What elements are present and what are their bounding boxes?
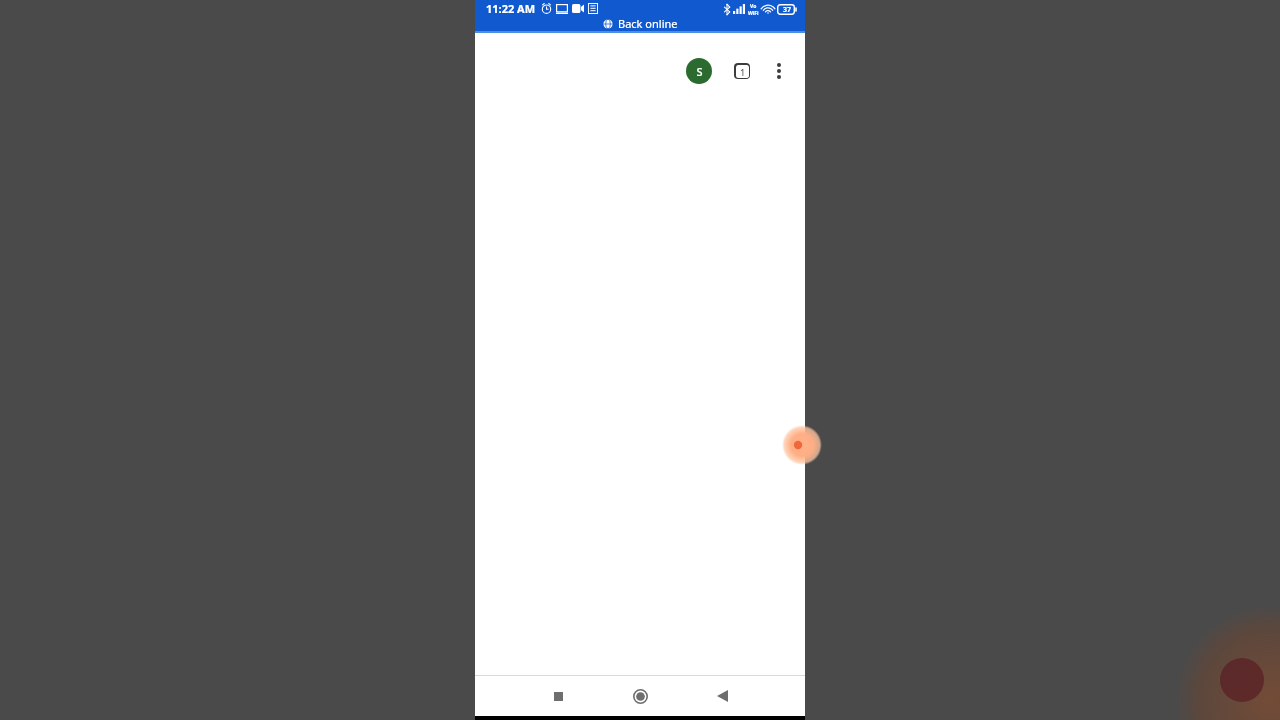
button[interactable]: Switch tabs	[725, 54, 758, 87]
button[interactable]: Back	[705, 679, 739, 713]
staticText: S	[696, 64, 703, 79]
button[interactable]: Recent apps	[541, 679, 575, 713]
button[interactable]: More options	[762, 54, 795, 87]
button[interactable]: Back online	[603, 16, 678, 31]
staticText: 1	[740, 66, 746, 78]
staticText: Back online	[618, 16, 678, 31]
staticText: 11:22 AM	[486, 1, 536, 16]
button[interactable]: Home	[623, 679, 657, 713]
staticText: Vo	[750, 3, 757, 10]
button[interactable]: Account	[686, 58, 712, 84]
staticText: 37	[783, 5, 792, 15]
staticText: WiFi	[748, 10, 759, 15]
